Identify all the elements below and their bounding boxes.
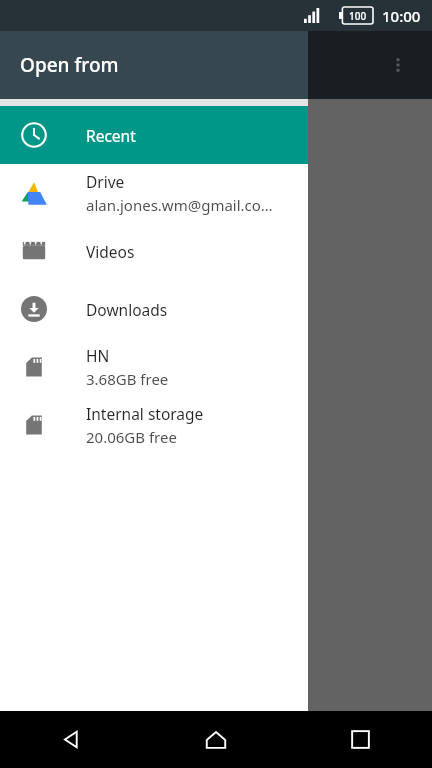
staticText: Downloads — [86, 299, 168, 320]
button[interactable]: Videos — [0, 222, 308, 280]
staticText: 100 — [349, 9, 367, 23]
staticText: Drive — [86, 171, 125, 192]
staticText: 10:00 — [382, 6, 421, 26]
staticText: Videos — [86, 241, 135, 262]
staticText: Open from — [20, 52, 119, 78]
button[interactable]: Internal storage — [0, 396, 308, 454]
staticText: alan.jones.wm@gmail.co… — [86, 195, 273, 215]
button[interactable]: Recent — [0, 106, 308, 164]
staticText: Internal storage — [86, 403, 204, 424]
button[interactable]: Drive — [0, 164, 308, 222]
staticText: HN — [86, 345, 110, 366]
button[interactable]: Back — [0, 711, 144, 768]
staticText: 20.06GB free — [86, 427, 177, 447]
button[interactable]: More options — [376, 43, 420, 87]
staticText: Recent — [86, 125, 136, 146]
button[interactable]: HN — [0, 338, 308, 396]
staticText: 3.68GB free — [86, 369, 169, 389]
button[interactable]: Home — [144, 711, 288, 768]
button[interactable]: Recents — [288, 711, 432, 768]
button[interactable]: Downloads — [0, 280, 308, 338]
